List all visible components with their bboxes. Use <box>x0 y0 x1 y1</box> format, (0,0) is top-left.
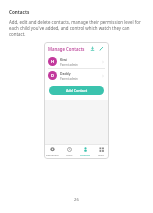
staticText: Manage Contacts <box>48 46 85 52</box>
button[interactable]: D <box>44 69 109 82</box>
staticText: Daddy <box>60 71 71 76</box>
button[interactable]: Edit contacts <box>98 45 105 52</box>
button[interactable]: H <box>44 55 109 68</box>
staticText: Contacts <box>80 153 90 156</box>
staticText: Alerts <box>66 153 73 156</box>
button[interactable]: Dashboard <box>44 144 61 159</box>
staticText: D <box>51 73 54 78</box>
staticText: Contacts <box>9 9 30 15</box>
staticText: 26 <box>74 197 79 203</box>
staticText: Parent admin <box>60 77 78 81</box>
button[interactable]: Sync contacts <box>89 45 96 52</box>
staticText: Dashboard <box>46 153 59 156</box>
staticText: Add Contact <box>66 88 88 93</box>
button[interactable]: Add Contact <box>49 86 104 95</box>
button[interactable]: More <box>93 144 109 159</box>
staticText: H <box>51 59 55 64</box>
staticText: More <box>98 153 104 156</box>
button[interactable]: Contacts <box>77 144 93 159</box>
staticText: Parent admin <box>60 63 78 67</box>
staticText: Kiwi <box>60 57 67 62</box>
button[interactable]: Alerts <box>61 144 77 159</box>
staticText: Add, edit and delete contacts, manage th… <box>9 19 145 37</box>
